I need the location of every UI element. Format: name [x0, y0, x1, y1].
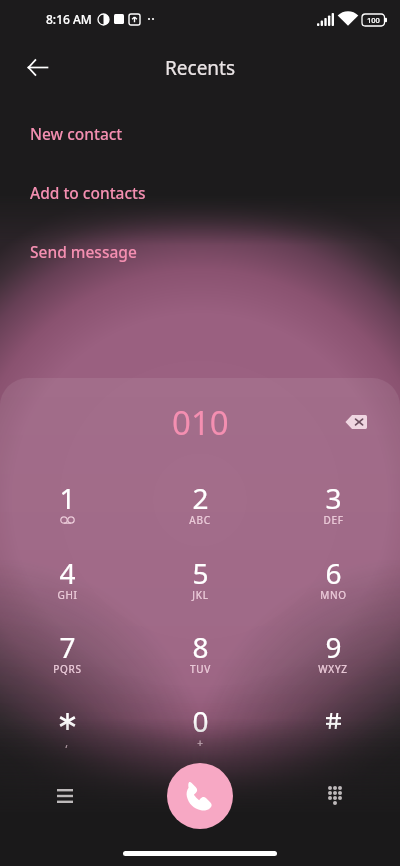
- staticText: 2: [192, 479, 209, 517]
- button[interactable]: 0: [134, 684, 266, 758]
- staticText: DEF: [323, 513, 344, 527]
- staticText: +: [197, 736, 204, 750]
- staticText: MNO: [320, 588, 347, 602]
- staticText: Add to contacts: [30, 182, 146, 203]
- staticText: 7: [59, 628, 76, 666]
- button[interactable]: 5: [134, 536, 266, 610]
- staticText: New contact: [30, 123, 123, 144]
- staticText: 9: [325, 628, 342, 666]
- button[interactable]: Send message: [0, 222, 400, 280]
- button[interactable]: Dialpad: [302, 763, 367, 828]
- button[interactable]: Backspace: [334, 400, 378, 444]
- staticText: 6: [325, 554, 342, 592]
- button[interactable]: 1: [1, 461, 133, 535]
- staticText: 100: [367, 15, 380, 25]
- staticText: ,: [65, 736, 69, 750]
- staticText: Send message: [30, 241, 137, 262]
- button[interactable]: 7: [1, 610, 133, 684]
- staticText: 0: [192, 702, 209, 740]
- staticText: 1: [59, 479, 76, 517]
- staticText: TUV: [190, 662, 211, 676]
- button[interactable]: Call: [167, 763, 233, 829]
- staticText: 3: [325, 479, 342, 517]
- button[interactable]: 2: [134, 461, 266, 535]
- button[interactable]: ,: [1, 684, 133, 758]
- button[interactable]: 9: [267, 610, 399, 684]
- button[interactable]: [267, 684, 399, 758]
- staticText: PQRS: [53, 662, 82, 676]
- staticText: WXYZ: [318, 662, 348, 676]
- button[interactable]: Back: [16, 46, 58, 88]
- staticText: 010: [172, 400, 229, 438]
- button[interactable]: Add to contacts: [0, 163, 400, 221]
- staticText: 8:16 AM: [46, 11, 92, 27]
- staticText: GHI: [57, 588, 78, 602]
- button[interactable]: 4: [1, 536, 133, 610]
- staticText: ABC: [189, 513, 211, 527]
- staticText: JKL: [192, 588, 209, 602]
- button[interactable]: Call history menu: [32, 763, 97, 828]
- button[interactable]: 3: [267, 461, 399, 535]
- staticText: 5: [192, 554, 209, 592]
- staticText: 8: [192, 628, 209, 666]
- button[interactable]: 8: [134, 610, 266, 684]
- staticText: 4: [59, 554, 76, 592]
- staticText: Recents: [165, 55, 236, 81]
- button[interactable]: 6: [267, 536, 399, 610]
- button[interactable]: New contact: [0, 104, 400, 162]
